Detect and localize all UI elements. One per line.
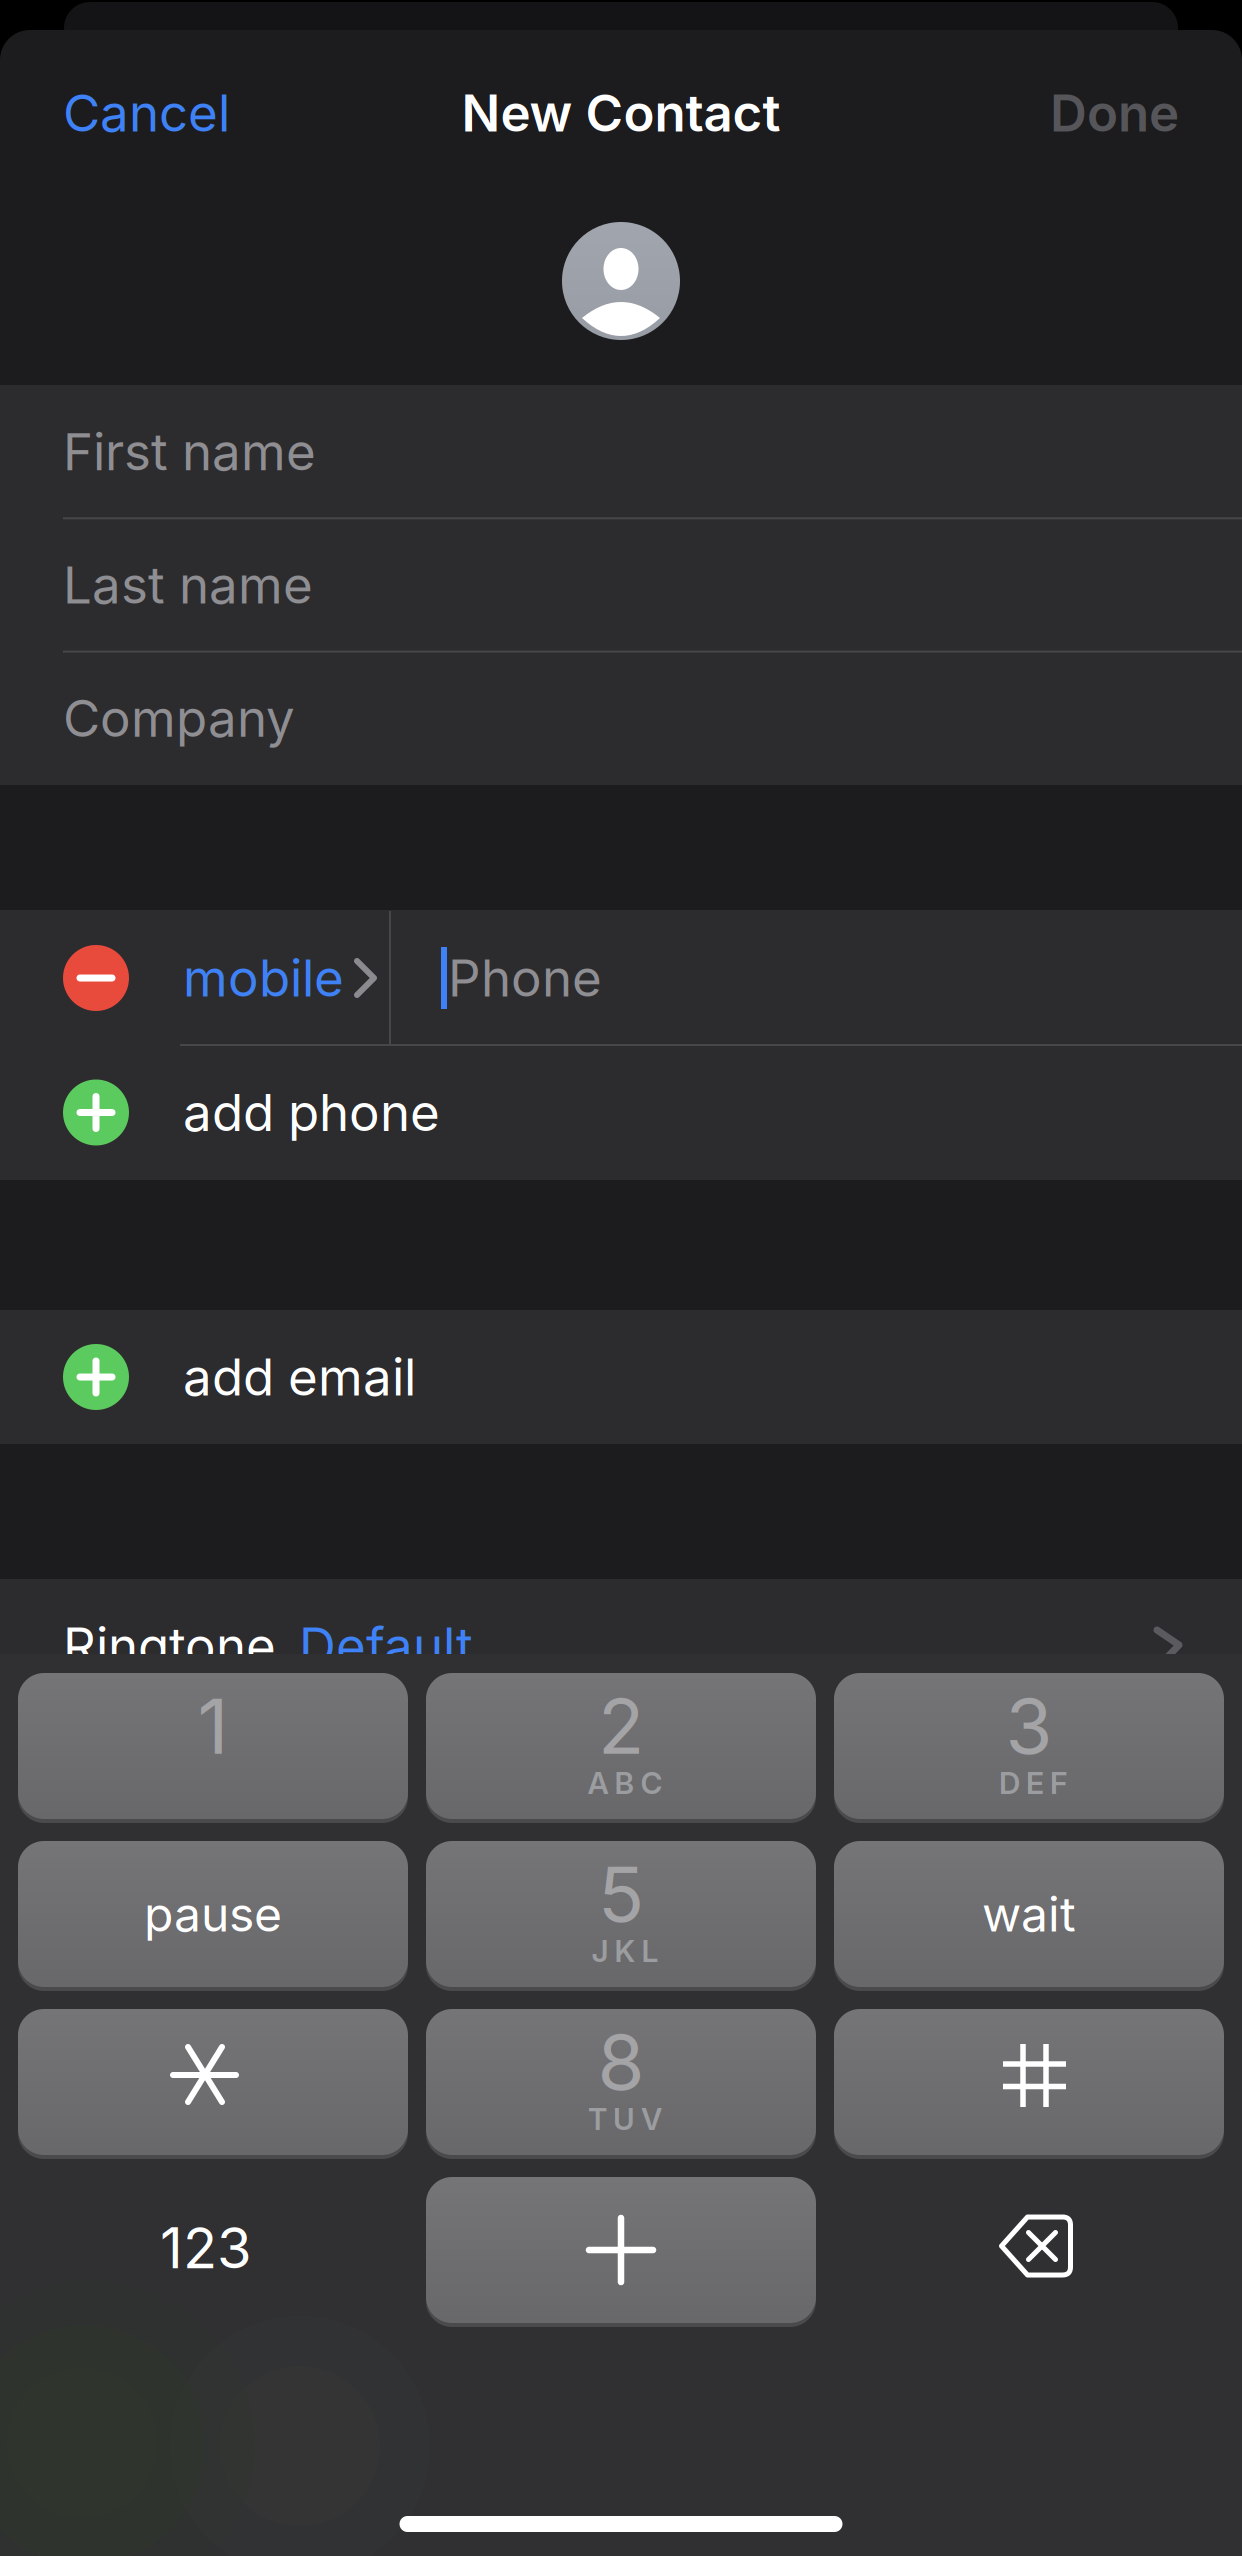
staticText: 5 [598,1848,644,1940]
button[interactable]: Company [63,652,1242,785]
staticText: First name [63,421,316,482]
staticText: Done [1050,82,1179,144]
staticText: wait [982,1885,1076,1943]
button[interactable]: wait [834,1841,1224,1987]
button[interactable]: 3 [834,1673,1224,1819]
button[interactable]: Plus [426,2177,816,2323]
staticText: add email [183,1346,416,1408]
staticText: Default [299,1615,473,1677]
staticText: 1 [197,1680,228,1772]
button[interactable]: 1 [18,1673,408,1819]
staticText: DEF [999,1765,1067,1801]
staticText: Company [63,687,295,749]
button[interactable]: mobile [183,911,393,1045]
button[interactable]: Done [879,68,1179,158]
button[interactable]: pause [18,1841,408,1987]
button[interactable]: Remove Phone [63,945,129,1011]
button[interactable]: 2 [426,1673,816,1819]
staticText: 123 [160,2214,252,2282]
button[interactable]: Phone [390,911,1242,1045]
staticText: Ringtone [63,1615,276,1677]
button[interactable]: Pound [834,2009,1224,2155]
button[interactable]: Last name [63,518,1242,651]
button[interactable]: Ringtone [0,1579,1242,1713]
button[interactable]: 123 [11,2175,401,2321]
staticText: pause [144,1885,282,1943]
staticText: New Contact [461,82,780,144]
staticText: JKL [591,1933,658,1969]
button[interactable]: Delete [980,2205,1090,2287]
staticText: 8 [597,2016,644,2108]
staticText: 3 [1005,1680,1052,1772]
button[interactable]: 8 [426,2009,816,2155]
button[interactable]: add phone [0,1045,1242,1179]
staticText: Phone [448,947,602,1009]
staticText: Cancel [63,82,230,144]
staticText: mobile [183,947,344,1009]
staticText: TUV [588,2101,662,2137]
staticText: ABC [587,1765,662,1801]
staticText: 2 [598,1680,644,1772]
button[interactable]: add email [0,1310,1242,1444]
button[interactable]: First name [63,385,1242,518]
staticText: Last name [63,554,313,616]
button[interactable]: Asterisk [18,2009,408,2155]
button[interactable]: Add Photo [562,222,680,340]
button[interactable]: Cancel [63,68,363,158]
button[interactable]: 5 [426,1841,816,1987]
staticText: add phone [183,1082,440,1143]
